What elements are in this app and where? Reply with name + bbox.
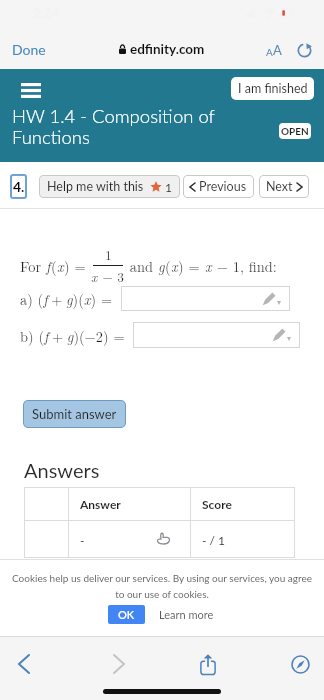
- staticText: A: [266, 46, 273, 58]
- button[interactable]: Reload page: [289, 37, 319, 63]
- staticText: OPEN: [281, 125, 309, 137]
- staticText: HW 1.4 - Composition of Functions: [12, 105, 244, 148]
- staticText: Score: [202, 497, 232, 511]
- staticText: (: [51, 256, 57, 276]
- staticText: Answers: [24, 458, 100, 482]
- button[interactable]: Forward: [101, 646, 137, 682]
- staticText: a) (f + g)(x) =: [20, 289, 113, 309]
- staticText: x: [57, 256, 64, 276]
- button[interactable]: OPEN: [279, 123, 311, 139]
- staticText: Cookies help us deliver our services. By…: [11, 572, 313, 600]
- staticText: x: [171, 256, 178, 276]
- staticText: 1: [105, 245, 112, 264]
- staticText: Answer: [80, 497, 121, 511]
- button[interactable]: Answer input: [133, 322, 300, 348]
- button[interactable]: Submit answer: [23, 400, 126, 428]
- staticText: − 1, find:: [212, 256, 277, 276]
- button[interactable]: Next: [259, 175, 309, 198]
- staticText: 4.: [13, 178, 25, 195]
- staticText: A: [273, 42, 282, 58]
- staticText: edfinity.com: [130, 41, 205, 57]
- staticText: Previous: [199, 179, 247, 194]
- staticText: Help me with this: [47, 179, 144, 194]
- staticText: ) =: [178, 256, 205, 276]
- button[interactable]: I am finished: [231, 77, 314, 100]
- button[interactable]: Bookmarks: [282, 646, 318, 682]
- button[interactable]: Back: [6, 646, 42, 682]
- staticText: b) (f + g)(−2) =: [20, 326, 125, 346]
- staticText: Learn more: [159, 608, 214, 621]
- button[interactable]: Help me with this: [39, 175, 180, 198]
- staticText: x: [91, 267, 98, 286]
- button[interactable]: OK: [108, 605, 145, 624]
- staticText: OK: [118, 608, 135, 621]
- staticText: - / 1: [202, 533, 225, 547]
- button[interactable]: Open menu: [14, 75, 48, 105]
- staticText: f: [46, 256, 51, 276]
- staticText: and: [125, 256, 158, 276]
- staticText: Submit answer: [32, 406, 117, 422]
- staticText: (: [165, 256, 171, 276]
- button[interactable]: Previous: [183, 175, 254, 198]
- staticText: I am finished: [238, 81, 308, 96]
- staticText: -: [80, 533, 85, 547]
- staticText: − 3: [98, 267, 125, 286]
- button[interactable]: Answer input: [121, 286, 290, 311]
- staticText: 1: [165, 180, 172, 194]
- staticText: For: [20, 256, 46, 276]
- button[interactable]: 4.: [10, 174, 27, 199]
- button[interactable]: Done: [0, 35, 56, 64]
- button[interactable]: Learn more: [156, 605, 217, 624]
- staticText: Next: [266, 179, 293, 194]
- button[interactable]: Share: [190, 646, 226, 682]
- staticText: ) =: [64, 256, 91, 276]
- button[interactable]: Page settings, text size: [259, 37, 289, 63]
- staticText: g: [158, 256, 165, 276]
- staticText: Done: [12, 41, 46, 58]
- staticText: x: [205, 256, 212, 276]
